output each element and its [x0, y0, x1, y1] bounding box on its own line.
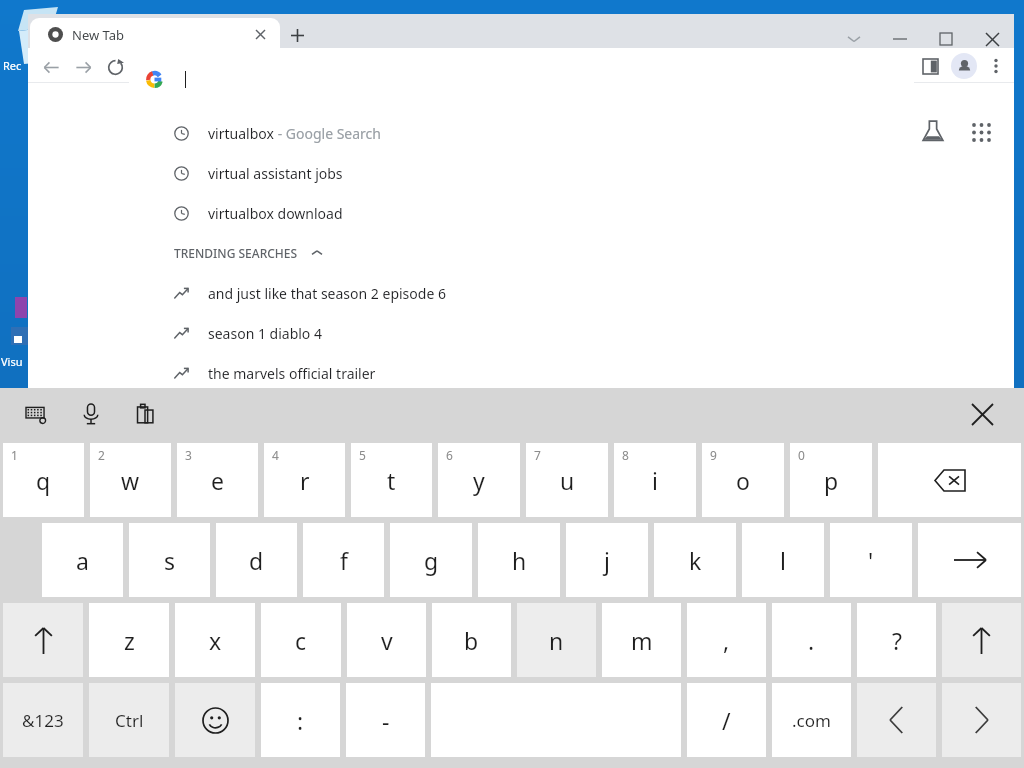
staticText: 7: [534, 447, 541, 463]
button[interactable]: left: [857, 683, 936, 757]
staticText: 9: [710, 447, 717, 463]
button[interactable]: and just like that season 2 episode 6: [129, 273, 914, 313]
staticText: the marvels official trailer: [208, 364, 376, 383]
button[interactable]: virtualbox download: [129, 193, 914, 233]
button[interactable]: Search tabs: [837, 22, 871, 56]
staticText: f: [340, 545, 348, 576]
staticText: 6: [446, 447, 453, 463]
button[interactable]: ?: [857, 603, 936, 677]
button[interactable]: shift: [942, 603, 1021, 677]
button[interactable]: Side panel: [916, 52, 944, 80]
button[interactable]: z: [89, 603, 169, 677]
button[interactable]: n: [517, 603, 596, 677]
button[interactable]: Forward: [68, 52, 98, 82]
staticText: 3: [185, 447, 192, 463]
button[interactable]: Keyboard settings: [19, 396, 55, 432]
staticText: w: [121, 465, 140, 496]
button[interactable]: c: [261, 603, 341, 677]
button[interactable]: a: [42, 523, 123, 597]
button[interactable]: shift: [3, 603, 83, 677]
staticText: k: [689, 545, 702, 576]
staticText: ,: [723, 625, 730, 656]
staticText: season 1 diablo 4: [208, 324, 322, 343]
button[interactable]: m: [602, 603, 681, 677]
button[interactable]: Ctrl: [89, 683, 169, 757]
button[interactable]: l: [742, 523, 824, 597]
button[interactable]: Labs: [920, 118, 946, 144]
button[interactable]: Minimise: [883, 22, 917, 56]
button[interactable]: ,: [687, 603, 766, 677]
staticText: ': [868, 545, 874, 576]
staticText: h: [512, 545, 527, 576]
button[interactable]: Clipboard: [127, 396, 163, 432]
button[interactable]: backspace: [878, 443, 1021, 517]
button[interactable]: d: [216, 523, 297, 597]
button[interactable]: Google apps: [971, 122, 991, 142]
staticText: .com: [792, 709, 831, 732]
button[interactable]: 9: [702, 443, 784, 517]
staticText: u: [560, 465, 575, 496]
staticText: New Tab: [72, 26, 125, 44]
button[interactable]: 2: [90, 443, 171, 517]
staticText: Rec: [3, 58, 22, 73]
button[interactable]: b: [432, 603, 511, 677]
staticText: .: [808, 625, 815, 656]
button[interactable]: Close tab: [250, 24, 270, 44]
staticText: Visu: [1, 354, 23, 369]
button[interactable]: 3: [177, 443, 258, 517]
staticText: Ctrl: [115, 709, 144, 732]
staticText: l: [780, 545, 786, 576]
button[interactable]: .com: [772, 683, 851, 757]
staticText: ?: [892, 625, 902, 656]
button[interactable]: s: [129, 523, 210, 597]
button[interactable]: Voice typing: [73, 396, 109, 432]
button[interactable]: -: [346, 683, 425, 757]
button[interactable]: /: [687, 683, 766, 757]
staticText: y: [473, 465, 485, 496]
button[interactable]: right: [942, 683, 1021, 757]
button[interactable]: New Tab: [30, 18, 280, 50]
button[interactable]: Back: [36, 52, 66, 82]
button[interactable]: Reload: [100, 52, 130, 82]
staticText: -: [382, 705, 390, 736]
staticText: c: [295, 625, 307, 656]
button[interactable]: enter: [918, 523, 1021, 597]
button[interactable]: emoji: [175, 683, 255, 757]
button[interactable]: 7: [526, 443, 608, 517]
button[interactable]: .: [772, 603, 851, 677]
staticText: and just like that season 2 episode 6: [208, 284, 446, 303]
button[interactable]: 8: [614, 443, 696, 517]
button[interactable]: Close keyboard: [956, 388, 1008, 440]
button[interactable]: k: [654, 523, 736, 597]
button[interactable]: Maximise: [929, 22, 963, 56]
button[interactable]: Close: [975, 22, 1009, 56]
button[interactable]: 4: [264, 443, 345, 517]
button[interactable]: 5: [351, 443, 432, 517]
button[interactable]: 1: [3, 443, 84, 517]
button[interactable]: virtual assistant jobs: [129, 153, 914, 193]
button[interactable]: v: [347, 603, 426, 677]
button[interactable]: &123: [3, 683, 83, 757]
button[interactable]: ': [830, 523, 912, 597]
button[interactable]: New tab: [284, 22, 310, 48]
button[interactable]: 0: [790, 443, 872, 517]
staticText: e: [211, 465, 224, 496]
button[interactable]: Profile: [948, 50, 980, 82]
button[interactable]: virtualbox: [129, 113, 914, 153]
button[interactable]: j: [566, 523, 648, 597]
staticText: virtual assistant jobs: [208, 164, 343, 183]
button[interactable]: x: [175, 603, 255, 677]
staticText: m: [631, 625, 653, 656]
button[interactable]: f: [303, 523, 384, 597]
button[interactable]: :: [261, 683, 340, 757]
button[interactable]: the marvels official trailer: [129, 353, 914, 393]
button[interactable]: season 1 diablo 4: [129, 313, 914, 353]
button[interactable]: g: [390, 523, 472, 597]
button[interactable]: TRENDING SEARCHES: [129, 233, 914, 273]
staticText: r: [300, 465, 310, 496]
button[interactable]: h: [478, 523, 560, 597]
button[interactable]: 6: [438, 443, 520, 517]
button[interactable]: More options: [982, 52, 1010, 80]
staticText: b: [464, 625, 479, 656]
